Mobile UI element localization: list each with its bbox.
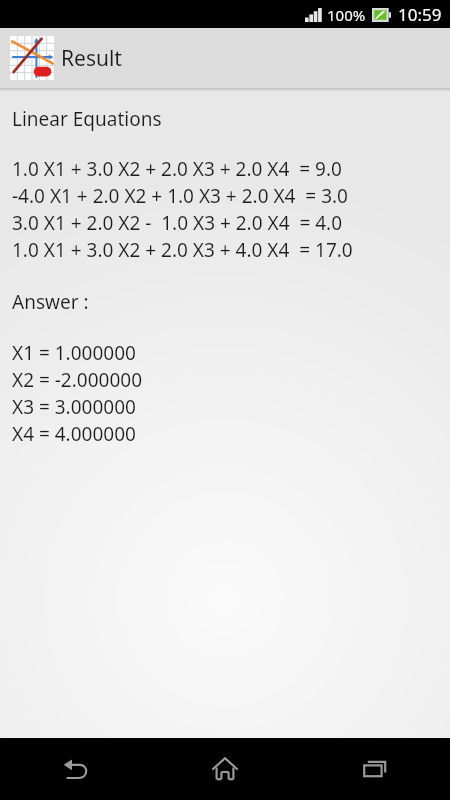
staticText: -4.0 X1 + 2.0 X2 + 1.0 X3 + 2.0 X4 = 3.0 — [12, 183, 348, 209]
staticText: X4 = 4.000000 — [12, 421, 136, 447]
staticText: X2 = -2.000000 — [12, 367, 143, 393]
staticText: 3.0 X1 + 2.0 X2 - 1.0 X3 + 2.0 X4 = 4.0 — [12, 210, 343, 236]
staticText: X3 = 3.000000 — [12, 394, 136, 420]
staticText: Linear Equations — [12, 106, 162, 132]
staticText: Result — [61, 44, 122, 73]
staticText: X1 = 1.000000 — [12, 340, 136, 366]
button[interactable]: Home — [150, 738, 300, 800]
staticText: 100% — [327, 5, 366, 25]
button[interactable]: Back — [0, 738, 150, 800]
staticText: 1.0 X1 + 3.0 X2 + 2.0 X3 + 4.0 X4 = 17.0 — [12, 237, 353, 263]
button[interactable]: Recent apps — [300, 738, 450, 800]
staticText: Answer : — [12, 289, 89, 315]
staticText: 10:59 — [398, 3, 442, 26]
staticText: 1.0 X1 + 3.0 X2 + 2.0 X3 + 2.0 X4 = 9.0 — [12, 156, 342, 182]
